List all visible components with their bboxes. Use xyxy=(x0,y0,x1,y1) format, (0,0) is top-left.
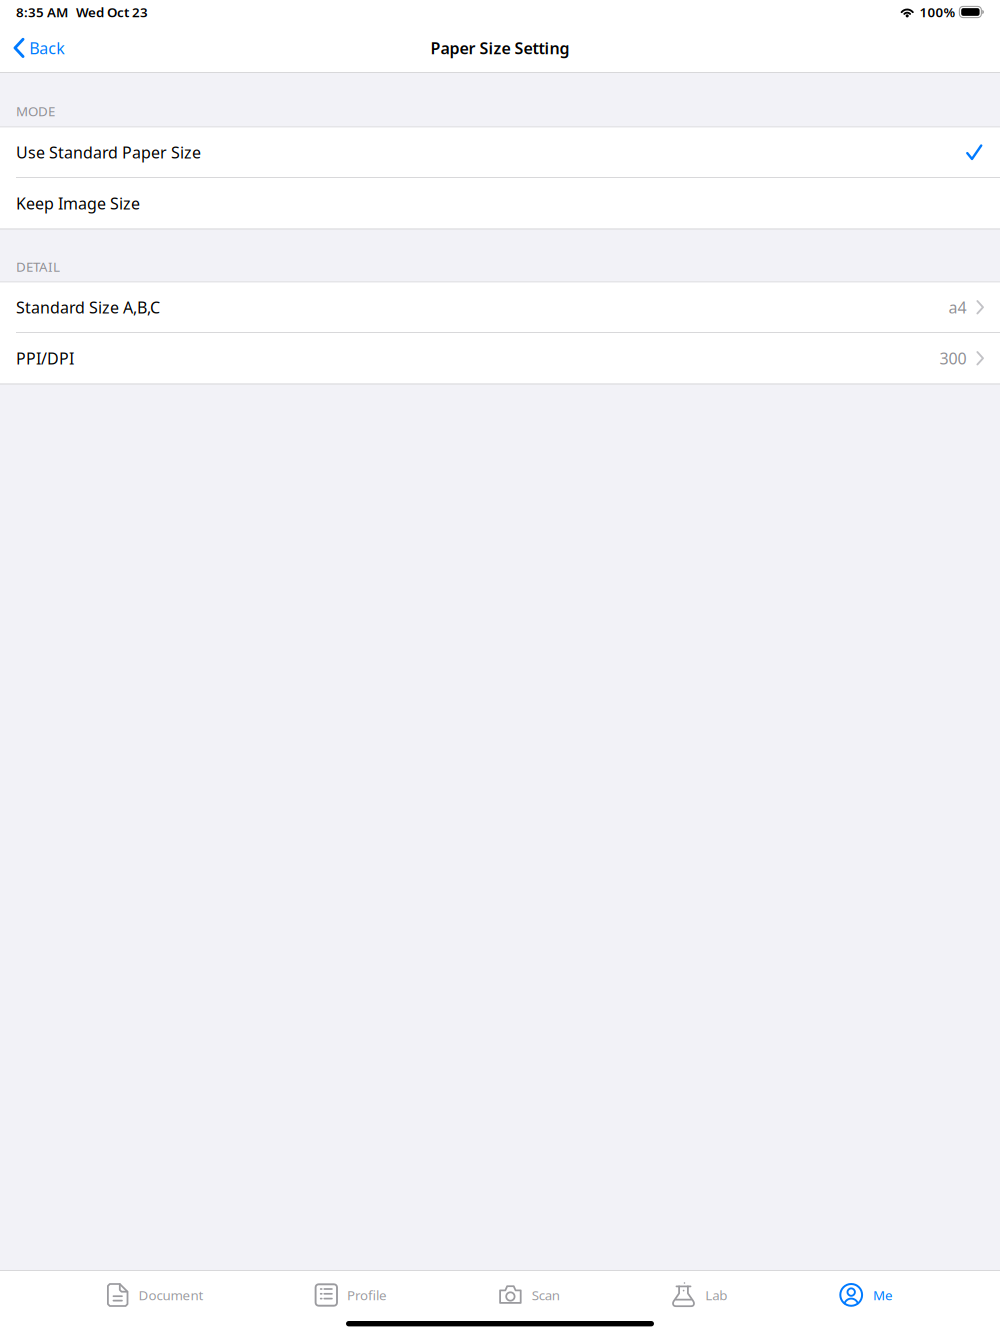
staticText: Me xyxy=(873,1286,893,1304)
button[interactable]: Scan xyxy=(499,1273,560,1317)
staticText: 100% xyxy=(919,3,955,21)
button[interactable]: Back xyxy=(0,24,77,72)
button[interactable]: Me xyxy=(839,1273,893,1317)
button[interactable]: Use Standard Paper Size xyxy=(0,127,1000,178)
staticText: Standard Size A,B,C xyxy=(16,297,160,318)
button[interactable]: Standard Size A,B,C xyxy=(0,282,1000,333)
staticText: PPI/DPI xyxy=(16,348,74,369)
staticText: Wed Oct 23 xyxy=(76,3,148,21)
button[interactable]: Lab xyxy=(672,1273,727,1317)
button[interactable]: Document xyxy=(107,1273,203,1317)
staticText: Keep Image Size xyxy=(16,193,140,214)
staticText: Lab xyxy=(705,1286,727,1304)
staticText: 300 xyxy=(939,348,966,369)
staticText: Paper Size Setting xyxy=(430,37,569,59)
button[interactable]: PPI/DPI xyxy=(0,333,1000,383)
staticText: Document xyxy=(138,1286,203,1304)
staticText: DETAIL xyxy=(16,258,60,275)
staticText: Profile xyxy=(347,1286,387,1304)
staticText: 8:35 AM xyxy=(16,3,68,21)
staticText: Use Standard Paper Size xyxy=(16,142,201,163)
staticText: MODE xyxy=(16,102,55,120)
staticText: Scan xyxy=(532,1286,560,1304)
button[interactable]: Profile xyxy=(315,1273,387,1317)
staticText: a4 xyxy=(948,297,966,318)
button[interactable]: Keep Image Size xyxy=(0,178,1000,228)
staticText: Back xyxy=(29,37,65,59)
